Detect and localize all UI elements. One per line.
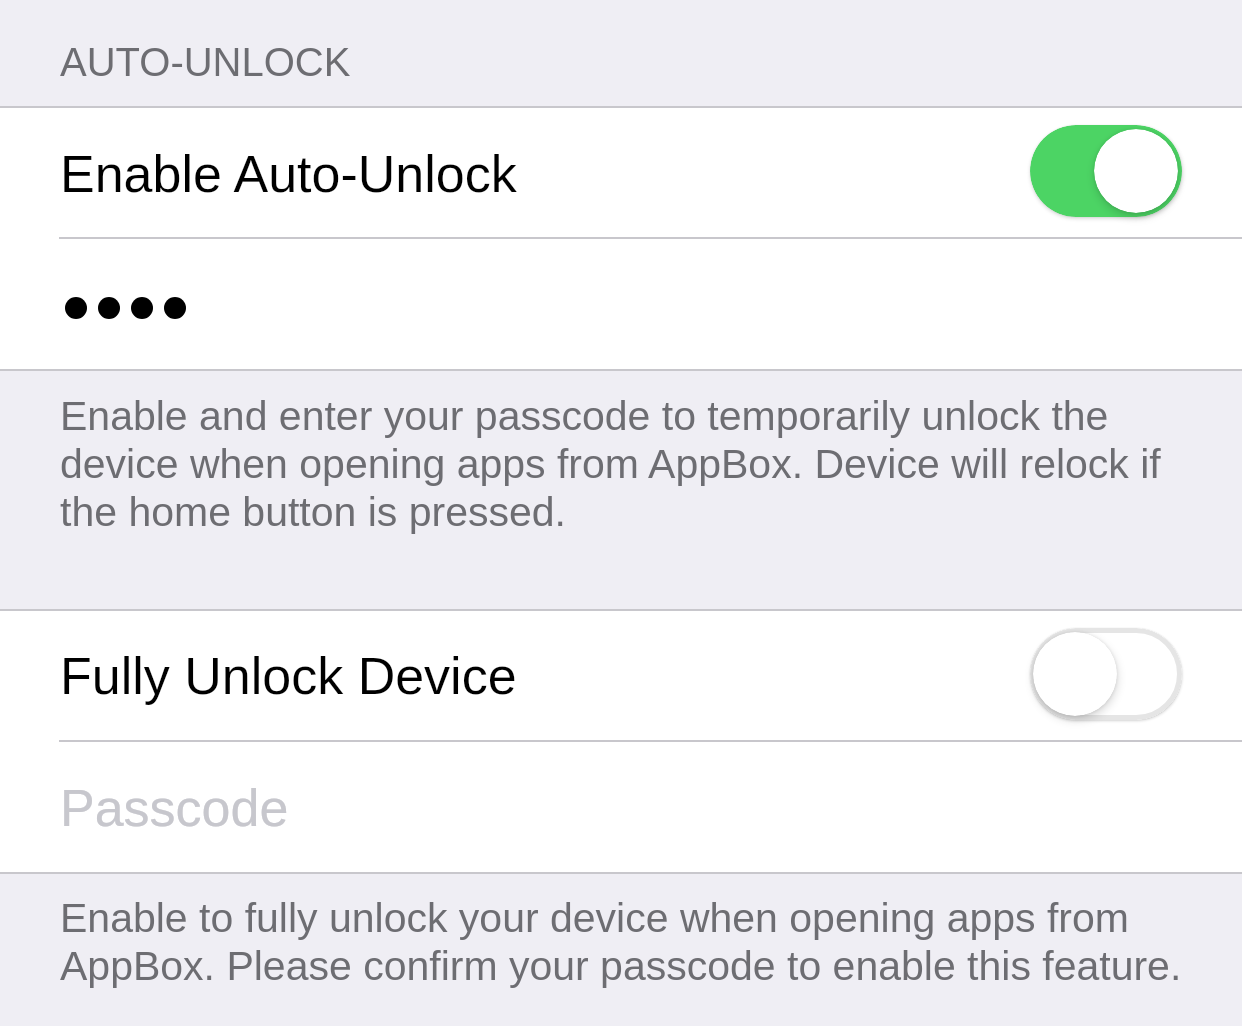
staticText: Enable to fully unlock your device when … [60, 894, 1182, 990]
button[interactable]: Fully Unlock Device [0, 611, 1242, 740]
button[interactable]: Enable Auto-Unlock [0, 108, 1242, 237]
button[interactable]: Enable Auto-Unlock, on [1030, 125, 1182, 217]
staticText: Enable Auto-Unlock [60, 145, 517, 203]
button[interactable]: Passcode, four characters entered [0, 239, 1242, 369]
button[interactable]: Passcode [0, 742, 1242, 872]
button[interactable]: Fully Unlock Device, off [1030, 628, 1182, 720]
staticText: AUTO-UNLOCK [60, 40, 351, 85]
staticText: Fully Unlock Device [60, 647, 517, 705]
staticText: Passcode [60, 779, 289, 837]
staticText: Enable and enter your passcode to tempor… [60, 392, 1161, 536]
